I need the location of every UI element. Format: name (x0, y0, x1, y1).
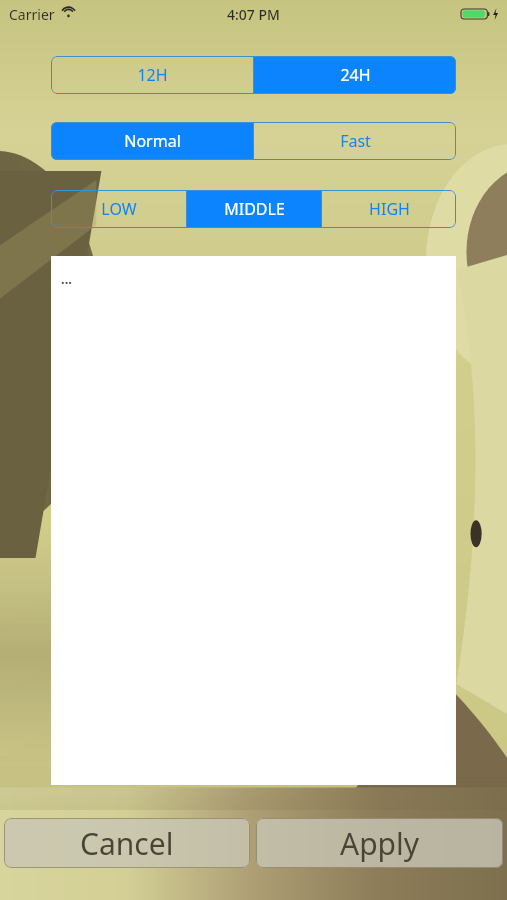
staticText: HIGH (369, 198, 410, 220)
button[interactable]: Normal (51, 122, 253, 160)
button[interactable]: 24H (254, 56, 456, 94)
button[interactable]: Fast (254, 122, 456, 160)
button[interactable]: Cancel (4, 818, 250, 868)
staticText: ... (61, 270, 72, 288)
staticText: LOW (101, 198, 137, 220)
staticText: MIDDLE (224, 198, 285, 220)
staticText: Normal (124, 130, 181, 152)
staticText: Cancel (80, 823, 174, 864)
staticText: 12H (137, 64, 168, 86)
staticText: 4:07 PM (227, 5, 280, 24)
button[interactable]: 12H (51, 56, 253, 94)
button[interactable]: HIGH (322, 190, 456, 228)
staticText: Carrier (9, 5, 55, 24)
staticText: Fast (340, 130, 371, 152)
button[interactable]: LOW (51, 190, 186, 228)
button[interactable]: MIDDLE (187, 190, 321, 228)
button[interactable]: Apply (256, 818, 503, 868)
staticText: 24H (340, 64, 371, 86)
staticText: Apply (340, 823, 420, 864)
